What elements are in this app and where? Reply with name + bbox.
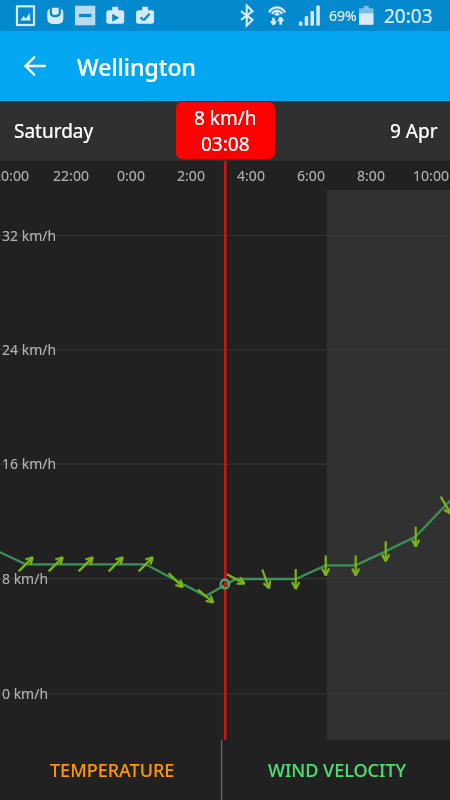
button[interactable]: WIND VELOCITY xyxy=(225,740,450,800)
staticText: 24 km/h xyxy=(2,340,57,359)
staticText: 8:00 xyxy=(341,166,401,185)
staticText: 16 km/h xyxy=(2,454,57,473)
staticText: 22:00 xyxy=(41,166,101,185)
staticText: Saturday xyxy=(14,118,94,144)
staticText: 69% xyxy=(329,6,357,25)
staticText: 6:00 xyxy=(281,166,341,185)
staticText: 32 km/h xyxy=(2,226,57,245)
staticText: 9 Apr xyxy=(390,118,438,144)
staticText: 4:00 xyxy=(221,166,281,185)
staticText: 0 km/h xyxy=(2,684,49,703)
staticText: 10:00 xyxy=(401,166,450,185)
staticText: 2:00 xyxy=(161,166,221,185)
button[interactable]: TEMPERATURE xyxy=(0,740,225,800)
staticText: 8 km/h xyxy=(2,569,49,588)
staticText: WIND VELOCITY xyxy=(268,758,407,783)
staticText: 03:08 xyxy=(201,131,250,157)
staticText: 20:00 xyxy=(0,166,41,185)
staticText: Wellington xyxy=(77,51,196,82)
staticText: TEMPERATURE xyxy=(50,758,175,783)
button[interactable]: 8 km/h xyxy=(176,102,275,159)
staticText: 20:03 xyxy=(384,3,433,29)
button[interactable]: Back xyxy=(12,54,58,78)
staticText: 0:00 xyxy=(101,166,161,185)
staticText: 8 km/h xyxy=(194,105,257,131)
